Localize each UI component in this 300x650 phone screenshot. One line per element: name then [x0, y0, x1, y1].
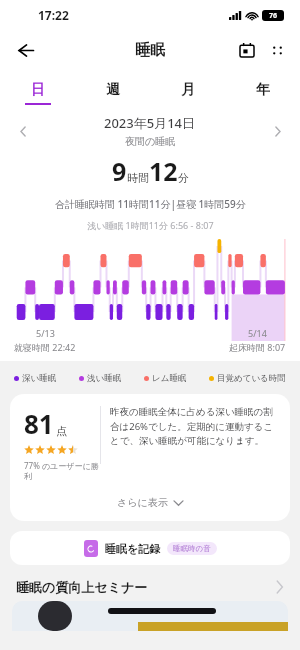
staticText: 5/13 — [36, 327, 55, 339]
staticText: さらに表示 — [117, 496, 168, 509]
button[interactable]: More options — [262, 35, 292, 65]
button[interactable]: 睡眠を記録 — [10, 531, 290, 565]
staticText: 77% のユーザーに勝利 — [24, 460, 100, 482]
staticText: 17:22 — [38, 7, 69, 23]
staticText: 76 — [269, 11, 278, 21]
staticText: 12 — [149, 154, 178, 188]
staticText: 9 — [112, 154, 127, 188]
staticText: 就寝時間 22:42 — [14, 341, 76, 353]
staticText: 合計睡眠時間 11時間11分|昼寝 1時間59分 — [55, 197, 246, 211]
button[interactable]: 睡眠の質向上セミナー — [0, 579, 300, 595]
staticText: 点 — [56, 424, 67, 438]
button[interactable]: Previous day — [10, 118, 36, 144]
staticText: 夜間の睡眠 — [125, 135, 176, 148]
staticText: 81 — [24, 406, 54, 441]
staticText: 睡眠を記録 — [105, 542, 161, 556]
staticText: 昨夜の睡眠全体に占める深い睡眠の割合は26%でした。定期的に運動することで、深い… — [110, 406, 278, 447]
button[interactable]: Back — [8, 33, 42, 67]
button[interactable]: さらに表示 — [10, 492, 290, 513]
staticText: 5/14 — [248, 327, 267, 339]
button[interactable]: Next day — [264, 118, 290, 144]
staticText: 月 — [181, 81, 195, 99]
staticText: 年 — [256, 81, 270, 99]
staticText: 睡眠の質向上セミナー — [16, 579, 148, 595]
staticText: 浅い睡眠 — [87, 373, 122, 384]
staticText: 時間 — [127, 171, 149, 185]
staticText: 浅い睡眠 1時間11分 6:56 - 8:07 — [87, 219, 214, 231]
button[interactable]: 81 — [10, 394, 290, 521]
staticText: 分 — [178, 171, 189, 185]
button[interactable]: 年 — [225, 76, 300, 110]
staticText: 目覚めている時間 — [217, 373, 286, 384]
staticText: 日 — [31, 81, 45, 99]
staticText: 深い睡眠 — [22, 373, 57, 384]
button[interactable]: 月 — [150, 76, 225, 110]
staticText: 週 — [106, 81, 120, 99]
button[interactable]: 週 — [75, 76, 150, 110]
button[interactable]: Calendar — [232, 35, 262, 65]
staticText: 睡眠時の音 — [173, 544, 211, 553]
staticText: 2023年5月14日 — [104, 114, 196, 132]
staticText: 睡眠 — [135, 41, 165, 60]
button[interactable]: 日 — [0, 76, 75, 110]
button[interactable]: Seminar banner — [12, 601, 288, 631]
staticText: レム睡眠 — [152, 373, 187, 384]
staticText: 起床時間 8:07 — [229, 341, 286, 353]
